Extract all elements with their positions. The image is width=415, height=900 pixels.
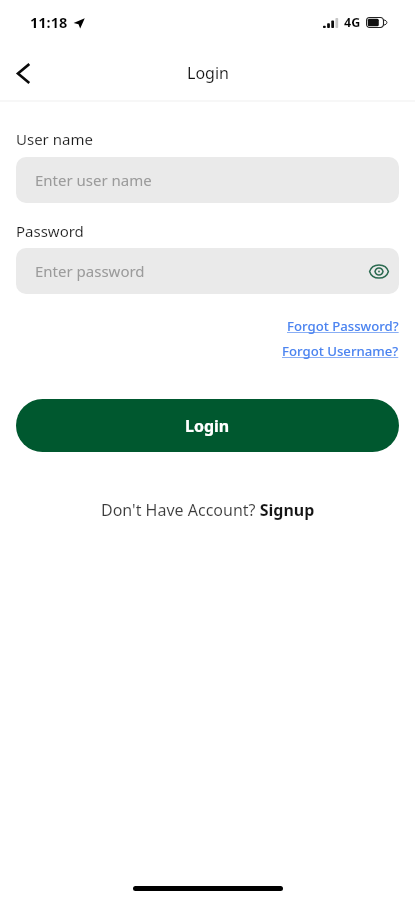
- staticText: Don't Have Account? Signup: [101, 499, 315, 521]
- button[interactable]: Login: [16, 399, 399, 452]
- button[interactable]: Forgot Password?: [287, 317, 399, 335]
- button[interactable]: Forgot Username?: [282, 342, 399, 360]
- staticText: 4G: [344, 14, 361, 31]
- staticText: Password: [16, 221, 84, 241]
- button[interactable]: Show password: [363, 255, 395, 287]
- button[interactable]: Enter password: [16, 248, 399, 294]
- button[interactable]: Enter user name: [16, 157, 399, 203]
- staticText: Forgot Password?: [287, 317, 399, 335]
- staticText: Enter password: [35, 261, 145, 281]
- staticText: 11:18: [30, 12, 68, 32]
- button[interactable]: Back: [2, 52, 44, 94]
- button[interactable]: Don't Have Account? Signup: [101, 499, 315, 521]
- staticText: User name: [16, 129, 93, 149]
- staticText: Forgot Username?: [282, 342, 399, 360]
- staticText: Enter user name: [35, 170, 152, 190]
- staticText: Login: [187, 62, 229, 84]
- staticText: Login: [185, 415, 230, 437]
